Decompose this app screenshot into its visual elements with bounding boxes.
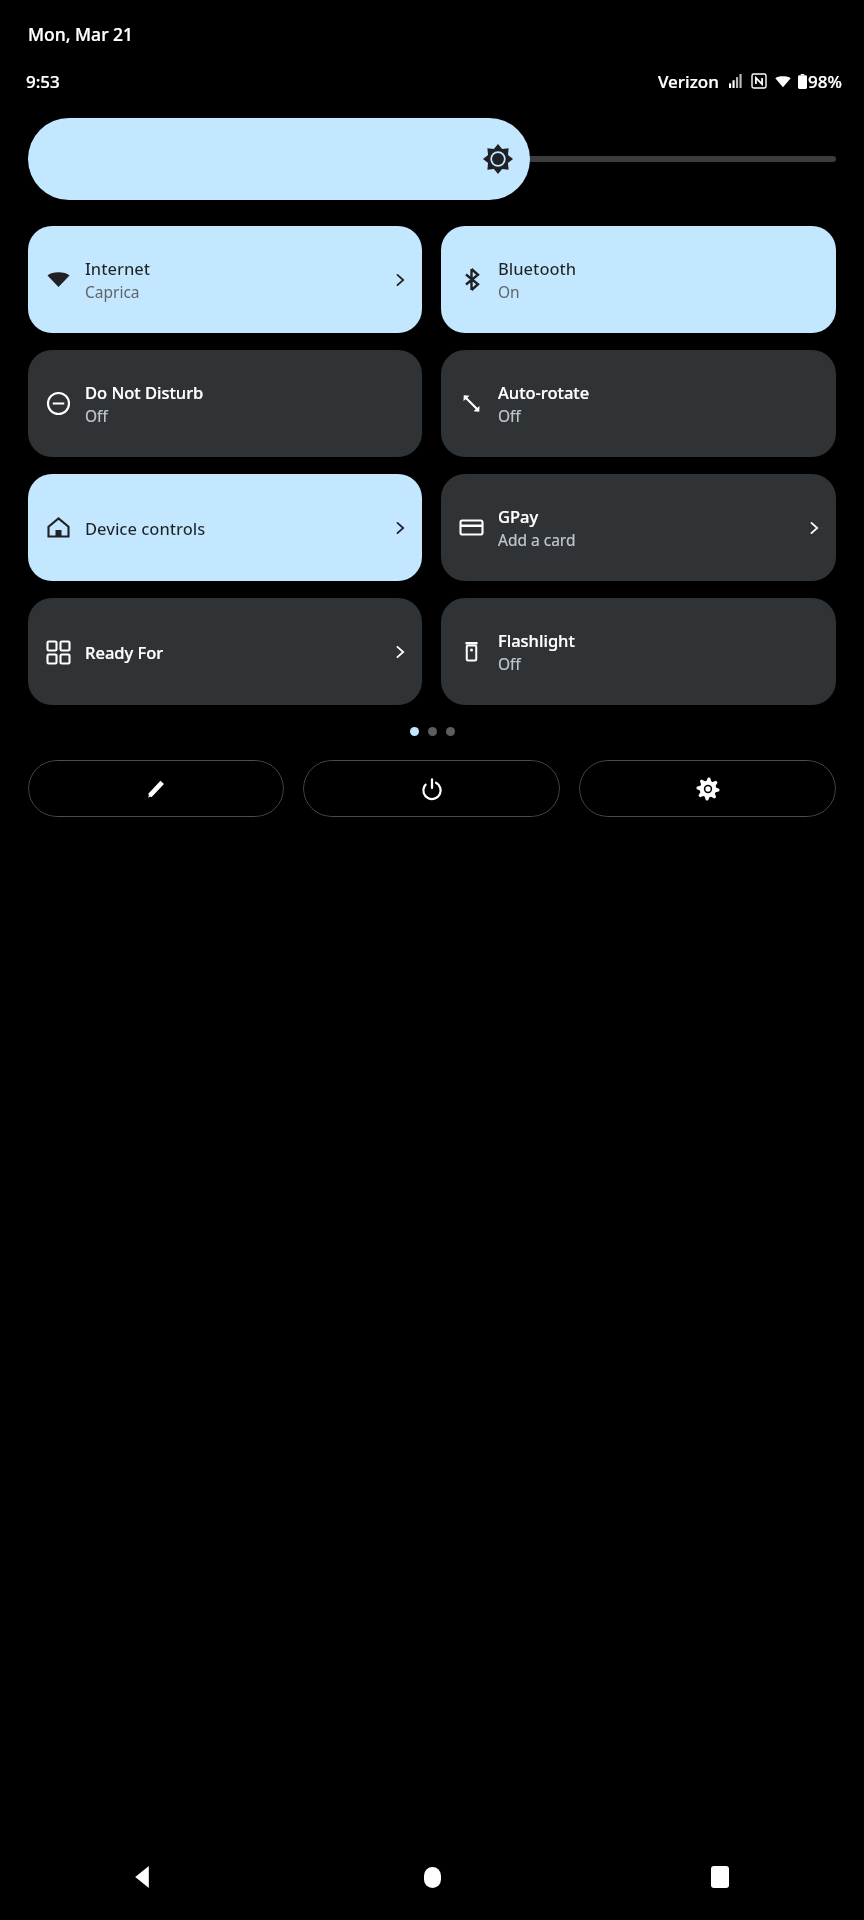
button[interactable]: Do Not Disturb [28, 350, 422, 457]
button[interactable]: Recents [576, 1834, 864, 1920]
staticText: GPay [498, 505, 539, 527]
button[interactable]: Power [303, 760, 560, 817]
button[interactable]: Edit tiles [28, 760, 284, 817]
button[interactable]: Flashlight [441, 598, 836, 705]
button[interactable]: Home [288, 1834, 576, 1920]
staticText: Ready For [85, 641, 164, 663]
staticText: Flashlight [498, 629, 575, 651]
button[interactable]: Internet [28, 226, 422, 333]
staticText: Bluetooth [498, 257, 577, 279]
staticText: Do Not Disturb [85, 381, 204, 403]
staticText: Device controls [85, 517, 206, 539]
button[interactable]: Auto-rotate [441, 350, 836, 457]
staticText: 9:53 [26, 70, 60, 93]
button[interactable]: Bluetooth [441, 226, 836, 333]
button[interactable]: Device controls [28, 474, 422, 581]
staticText: Caprica [85, 281, 140, 302]
staticText: Verizon [658, 70, 719, 93]
staticText: Off [498, 405, 521, 426]
staticText: 98% [808, 70, 842, 93]
button[interactable]: Back [0, 1834, 288, 1920]
button[interactable]: Ready For [28, 598, 422, 705]
staticText: Auto-rotate [498, 381, 590, 403]
staticText: Mon, Mar 21 [28, 22, 134, 46]
staticText: Off [498, 653, 521, 674]
staticText: Internet [85, 257, 151, 279]
staticText: Off [85, 405, 108, 426]
button[interactable]: GPay [441, 474, 836, 581]
button[interactable]: Brightness [28, 118, 836, 200]
button[interactable]: Settings [579, 760, 836, 817]
staticText: On [498, 281, 520, 302]
staticText: Add a card [498, 529, 576, 550]
